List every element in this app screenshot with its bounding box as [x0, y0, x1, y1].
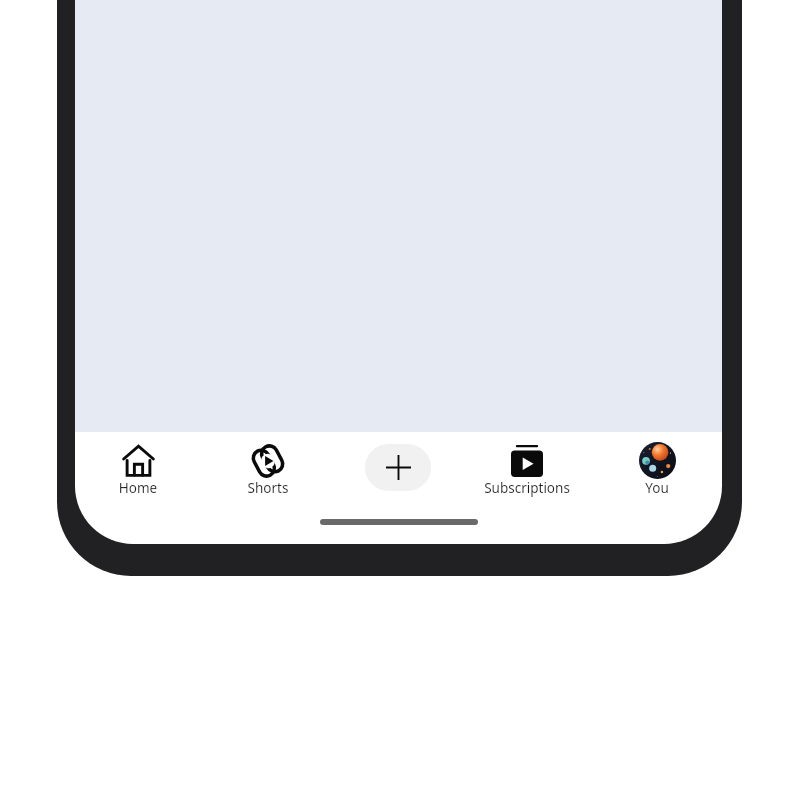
button[interactable]: You	[602, 432, 712, 543]
button[interactable]: Shorts	[213, 432, 323, 543]
button[interactable]: Create	[365, 444, 431, 491]
staticText: Home	[83, 479, 193, 497]
button[interactable]: Subscriptions	[457, 432, 597, 543]
staticText: You	[602, 479, 712, 497]
button[interactable]: Home	[83, 432, 193, 543]
staticText: Subscriptions	[457, 479, 597, 497]
staticText: Shorts	[213, 479, 323, 497]
